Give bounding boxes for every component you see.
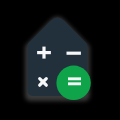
button[interactable]: Calculator app icon <box>0 0 120 120</box>
